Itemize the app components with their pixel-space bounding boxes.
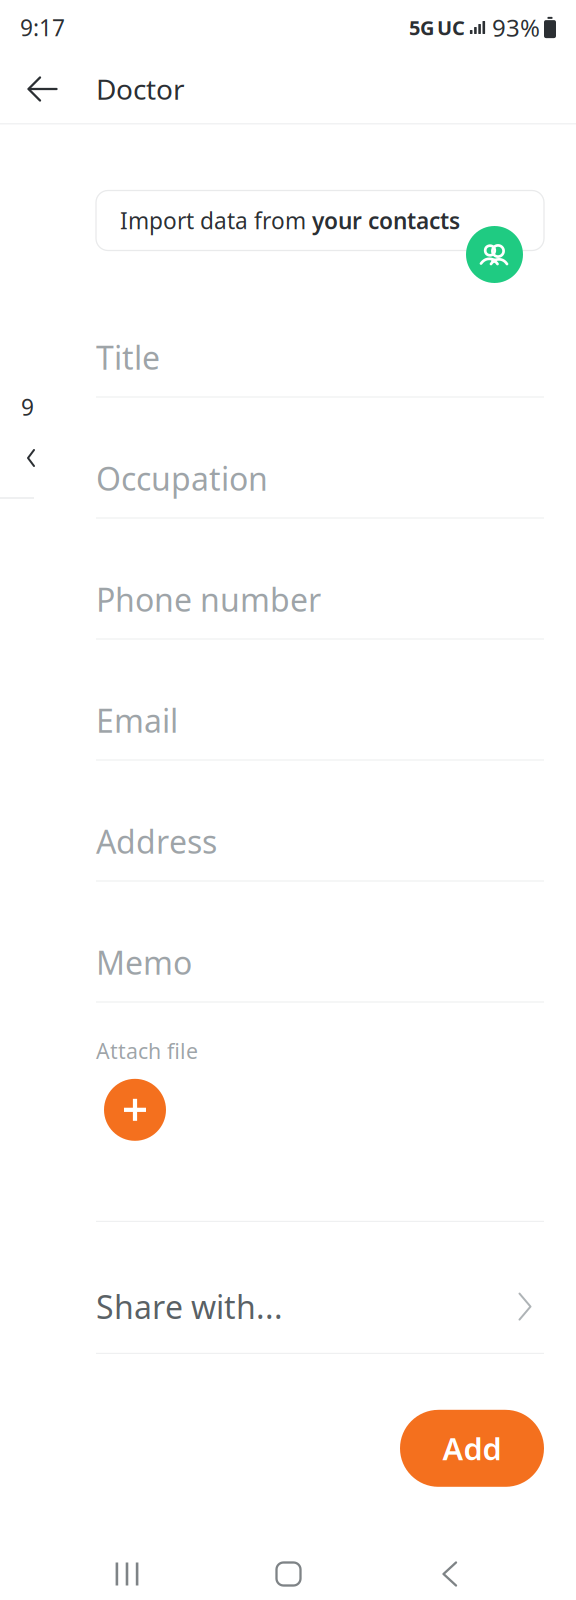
staticText: Title — [96, 336, 160, 378]
button[interactable]: Home — [252, 1544, 324, 1600]
staticText: Add — [442, 1428, 501, 1469]
staticText: UC — [437, 14, 465, 41]
staticText: Attach file — [96, 1036, 198, 1065]
button[interactable]: Back — [414, 1544, 486, 1600]
staticText: Share with... — [96, 1285, 283, 1328]
staticText: 93% — [492, 12, 540, 43]
button[interactable]: Previous — [27, 449, 36, 468]
staticText: Occupation — [96, 457, 268, 499]
staticText: Import data from your contacts — [120, 205, 460, 235]
staticText: Address — [96, 820, 217, 862]
staticText: Email — [96, 699, 178, 741]
staticText: 9:17 — [20, 12, 65, 42]
button[interactable]: Import from contacts — [466, 226, 523, 283]
staticText: 5G — [409, 14, 434, 41]
button[interactable]: Recent apps — [91, 1544, 163, 1600]
staticText: Doctor — [96, 70, 185, 108]
staticText: 9 — [21, 392, 34, 422]
button[interactable]: Import data from your contacts — [96, 190, 544, 250]
button[interactable]: Share with... — [96, 1222, 544, 1353]
button[interactable]: Back — [0, 55, 60, 123]
button[interactable]: Add — [400, 1410, 544, 1487]
staticText: Memo — [96, 941, 192, 983]
button[interactable]: Attach file — [104, 1079, 166, 1141]
staticText: Phone number — [96, 578, 321, 620]
